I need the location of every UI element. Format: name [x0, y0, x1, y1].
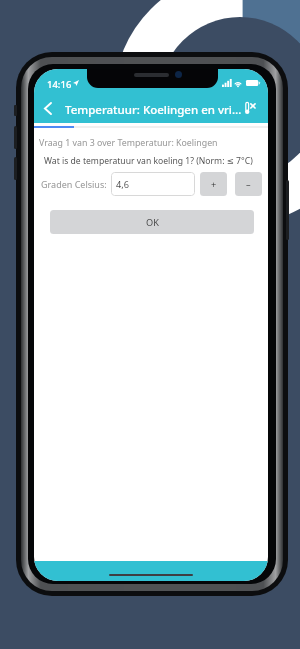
- staticText: Temperatuur: Koelingen en vri…: [65, 102, 242, 118]
- staticText: 14:16: [47, 78, 72, 91]
- button[interactable]: OK: [50, 210, 254, 234]
- staticText: Graden Celsius:: [41, 178, 107, 190]
- button[interactable]: Back: [37, 95, 57, 121]
- staticText: Wat is de temperatuur van koeling 1? (No…: [44, 155, 253, 167]
- staticText: –: [246, 178, 251, 191]
- button[interactable]: +: [200, 172, 227, 196]
- staticText: 4,6: [116, 178, 129, 191]
- staticText: +: [211, 178, 217, 191]
- button[interactable]: 4,6: [111, 172, 195, 196]
- staticText: OK: [146, 216, 159, 229]
- button[interactable]: –: [235, 172, 262, 196]
- staticText: Vraag 1 van 3 over Temperatuur: Koelinge…: [39, 137, 218, 149]
- button[interactable]: Clear temperature: [237, 95, 263, 121]
